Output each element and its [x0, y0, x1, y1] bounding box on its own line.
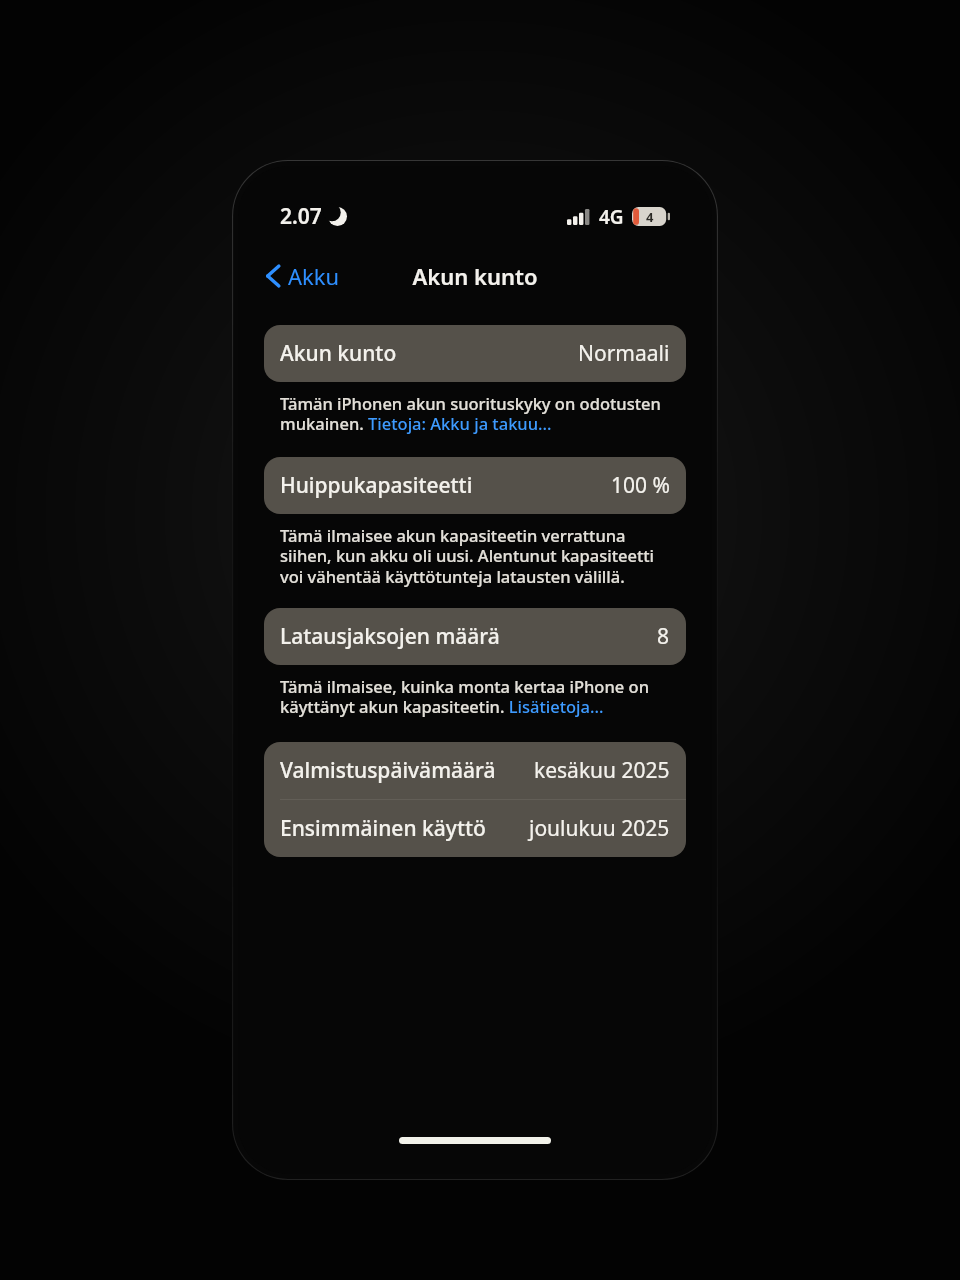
- staticText: 4: [646, 208, 654, 226]
- button[interactable]: Valmistuspäivämäärä: [264, 742, 686, 799]
- button[interactable]: Ensimmäinen käyttö: [264, 800, 686, 857]
- button[interactable]: Akun kunto: [264, 325, 686, 382]
- staticText: Akun kunto: [412, 261, 538, 291]
- staticText: Normaali: [578, 339, 670, 368]
- button[interactable]: Latausjaksojen määrä: [264, 608, 686, 665]
- staticText: Tämä ilmaisee, kuinka monta kertaa iPhon…: [280, 675, 674, 718]
- staticText: Tämä ilmaisee akun kapasiteetin verrattu…: [280, 524, 674, 588]
- staticText: 2.07: [280, 202, 322, 231]
- staticText: Tämän iPhonen akun suorituskyky on odotu…: [280, 392, 674, 435]
- staticText: 4G: [599, 204, 624, 230]
- staticText: Latausjaksojen määrä: [280, 622, 500, 651]
- staticText: Huippukapasiteetti: [280, 471, 473, 500]
- staticText: Valmistuspäivämäärä: [280, 756, 496, 785]
- staticText: Akun kunto: [280, 339, 397, 368]
- staticText: 8: [657, 622, 670, 651]
- staticText: joulukuu 2025: [529, 814, 670, 843]
- staticText: Akku: [288, 261, 340, 291]
- button[interactable]: Akku: [256, 255, 350, 297]
- button[interactable]: Huippukapasiteetti: [264, 457, 686, 514]
- staticText: 100 %: [611, 471, 670, 500]
- staticText: kesäkuu 2025: [534, 756, 670, 785]
- staticText: Ensimmäinen käyttö: [280, 814, 486, 843]
